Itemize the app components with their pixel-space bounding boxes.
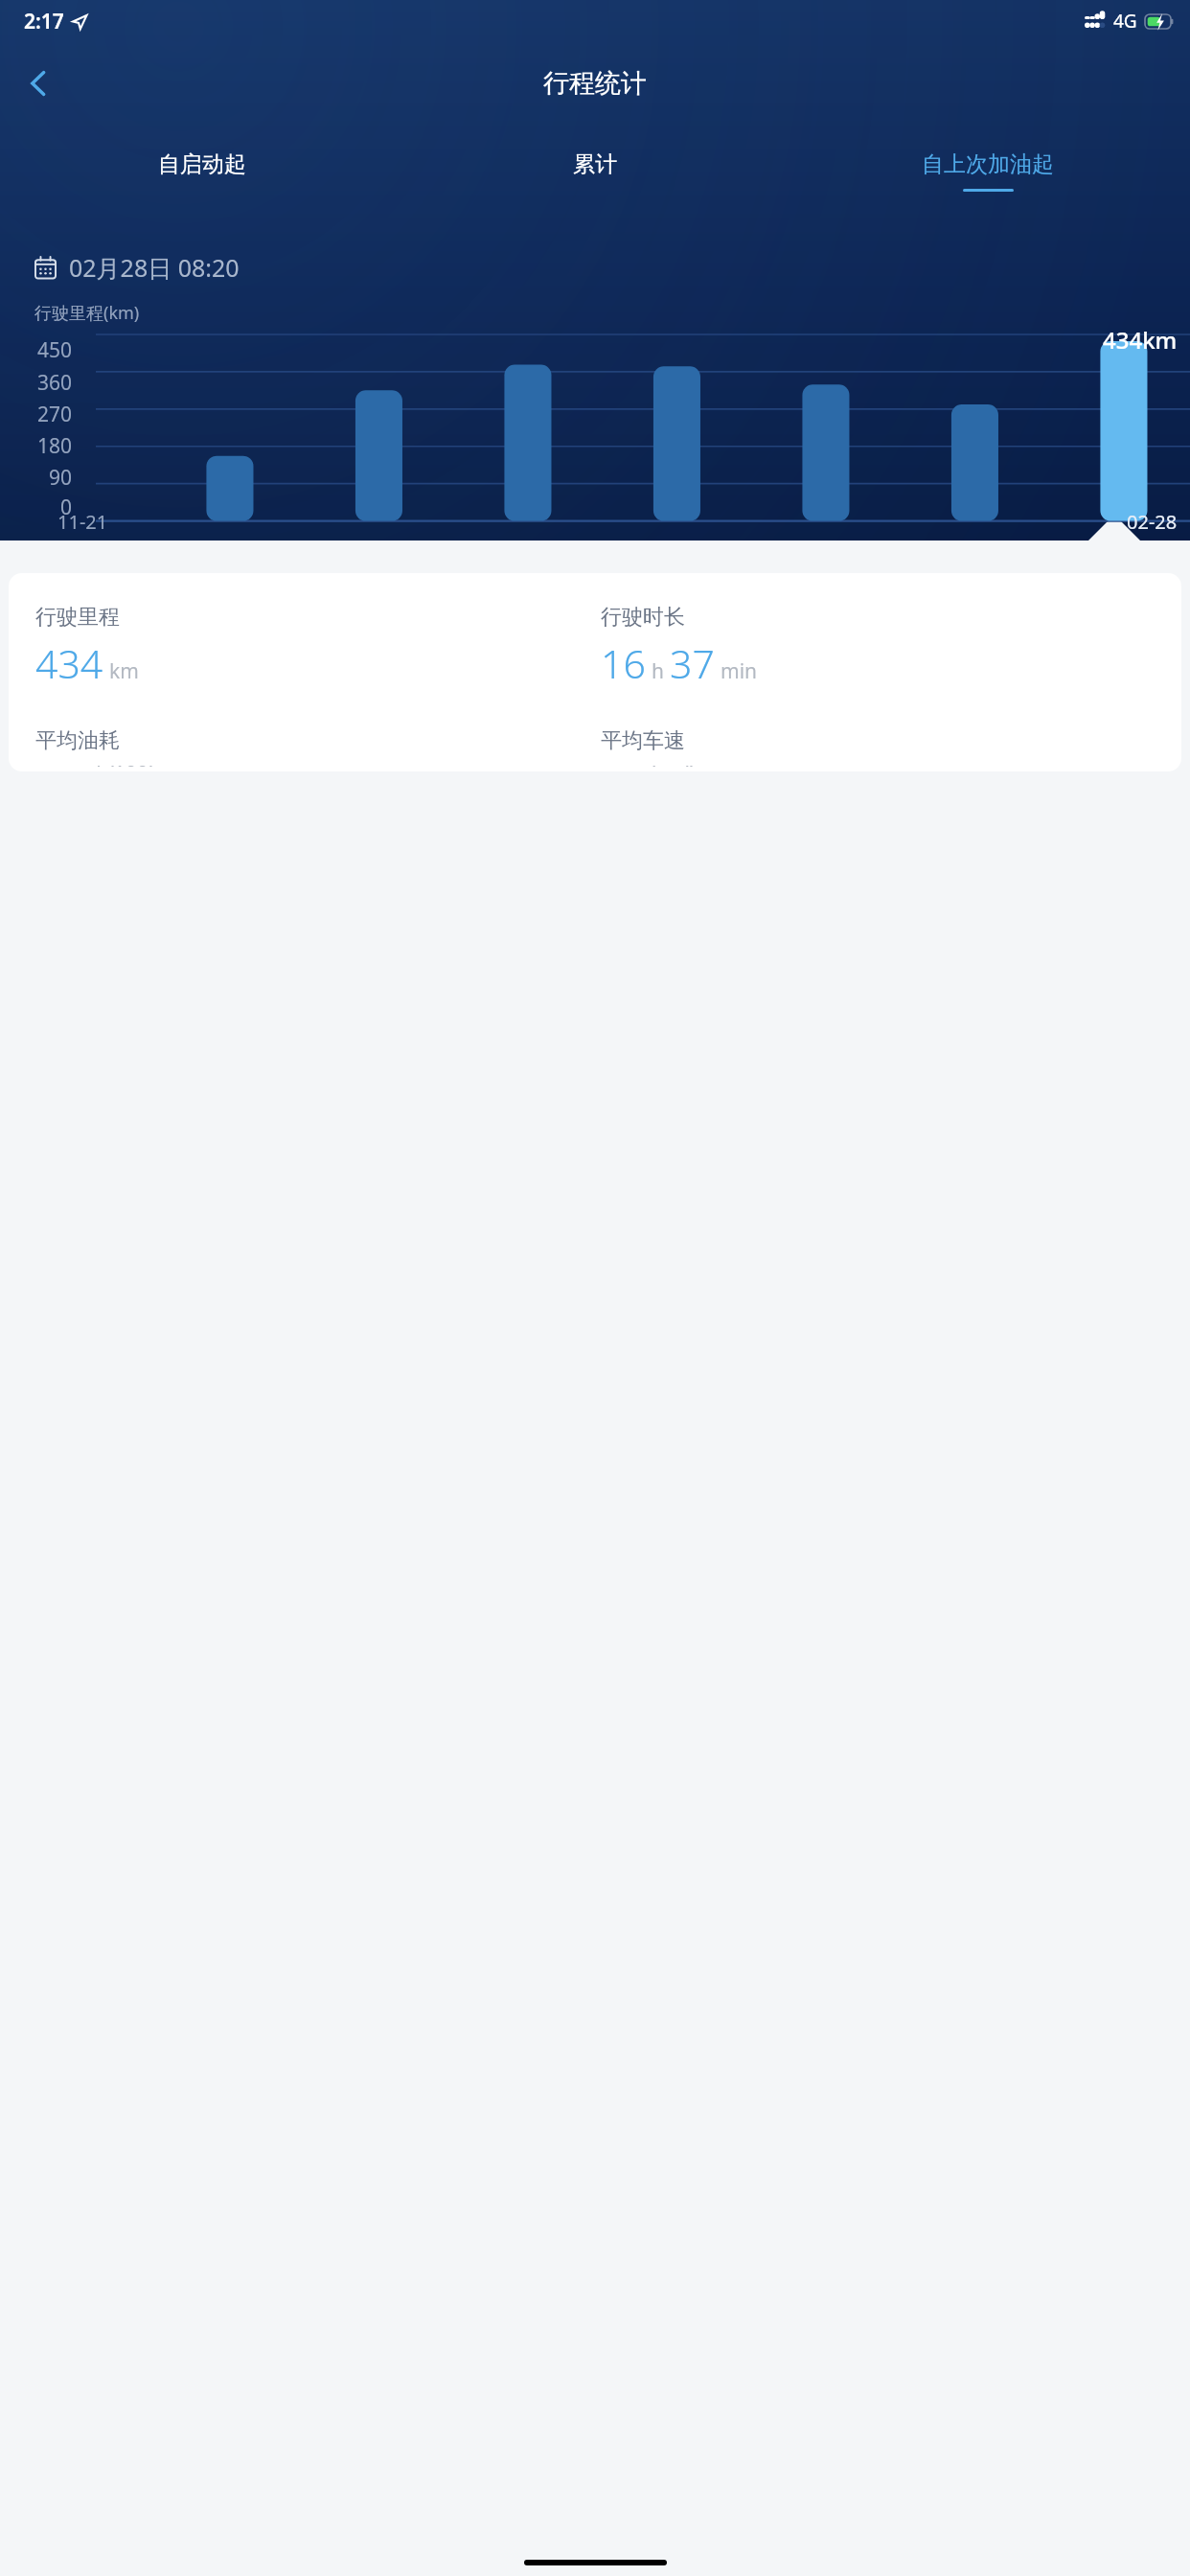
staticText: 累计 (573, 150, 617, 178)
staticText: 11-21 (57, 509, 108, 535)
staticText: 行驶里程 (35, 604, 120, 631)
staticText: 行程统计 (543, 67, 647, 100)
staticText: 自上次加油起 (922, 150, 1054, 178)
staticText: 434km (1103, 324, 1178, 356)
staticText: km/h (652, 760, 701, 767)
staticText: 360 (37, 369, 73, 397)
staticText: 02月28日 08:20 (69, 251, 240, 284)
staticText: 434 (35, 636, 103, 690)
staticText: 37 (670, 636, 715, 690)
staticText: 行驶里程(km) (34, 301, 140, 325)
staticText: 自启动起 (158, 150, 246, 178)
staticText: 平均油耗 (35, 727, 120, 754)
staticText: 2:17 (24, 8, 64, 35)
staticText: 平均车速 (601, 727, 685, 754)
button[interactable]: 累计 (399, 125, 791, 217)
staticText: 0 (60, 494, 73, 521)
staticText: 4G (1113, 9, 1137, 34)
staticText: min (721, 657, 758, 685)
staticText: h (652, 657, 664, 685)
button[interactable]: 行驶里程 (9, 573, 1181, 771)
button[interactable]: 自启动起 (6, 125, 399, 217)
staticText: km (109, 657, 139, 685)
staticText: 450 (37, 336, 73, 364)
staticText: 02-28 (1127, 509, 1178, 535)
staticText: 270 (37, 401, 73, 428)
staticText: 90 (49, 464, 73, 492)
staticText: 180 (37, 432, 73, 460)
staticText: 行驶时长 (601, 604, 685, 631)
button[interactable]: Back (8, 53, 69, 114)
staticText: L/100km (96, 760, 178, 767)
button[interactable]: 自上次加油起 (791, 125, 1184, 217)
staticText: 16 (601, 636, 646, 690)
